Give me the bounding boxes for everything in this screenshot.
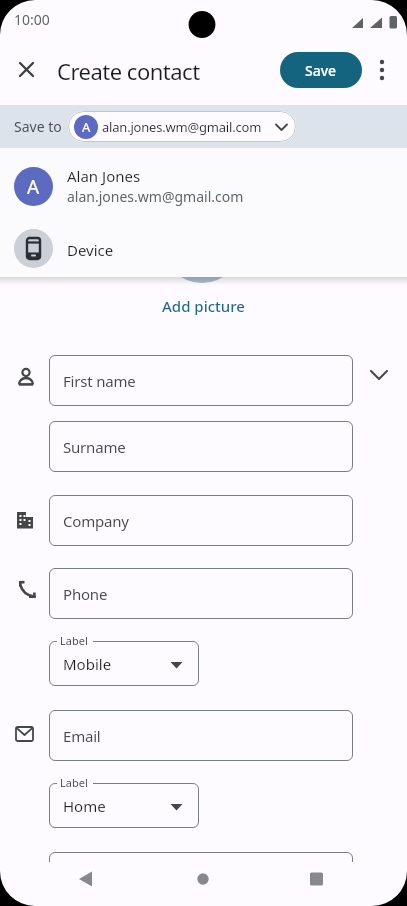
staticText: 10:00 <box>14 10 50 28</box>
button[interactable]: Home <box>49 783 199 828</box>
button[interactable]: A <box>0 152 407 214</box>
staticText: Surname <box>63 437 126 457</box>
staticText: Phone <box>63 584 108 604</box>
staticText: Alan Jones <box>67 166 141 186</box>
button[interactable]: Mobile <box>49 641 199 686</box>
staticText: Home <box>63 796 106 816</box>
staticText: Email <box>63 726 101 746</box>
button[interactable] <box>64 864 104 894</box>
staticText: A <box>82 118 91 136</box>
button[interactable]: Email <box>49 710 353 761</box>
staticText: Company <box>63 511 129 531</box>
button[interactable] <box>183 864 223 894</box>
staticText: A <box>27 174 40 200</box>
staticText: Save to <box>14 117 62 136</box>
button[interactable]: Add picture <box>143 293 263 319</box>
button[interactable]: First name <box>49 355 353 406</box>
button[interactable]: Company <box>49 495 353 546</box>
staticText: Add picture <box>162 296 245 316</box>
staticText: Label <box>60 633 88 648</box>
button[interactable]: A <box>68 111 296 142</box>
button[interactable] <box>296 864 336 894</box>
staticText: Label <box>60 775 88 790</box>
staticText: alan.jones.wm@gmail.com <box>67 187 244 206</box>
staticText: Mobile <box>63 654 112 674</box>
button[interactable]: Save <box>280 52 362 88</box>
button[interactable]: Surname <box>49 421 353 472</box>
staticText: alan.jones.wm@gmail.com <box>102 118 262 136</box>
staticText: First name <box>63 371 136 391</box>
button[interactable] <box>368 54 398 86</box>
staticText: Save <box>305 61 337 80</box>
staticText: Create contact <box>57 56 200 84</box>
staticText: Device <box>67 240 114 260</box>
button[interactable] <box>10 54 42 86</box>
button[interactable]: Phone <box>49 568 353 619</box>
button[interactable]: Device <box>0 222 407 277</box>
